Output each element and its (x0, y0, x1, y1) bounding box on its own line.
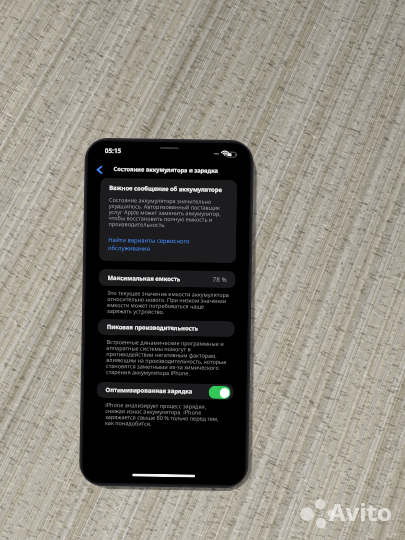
staticText: iPhone анализирует процесс зарядки, сниж… (105, 401, 227, 429)
staticText: Avito (329, 495, 392, 528)
button[interactable]: Максимальная емкость (98, 269, 236, 288)
staticText: Встроенные динамические программные и ап… (106, 338, 228, 378)
staticText: Важное сообщение об аккумуляторе (109, 184, 222, 194)
staticText: Это текущее значение емкости аккумулятор… (107, 289, 229, 317)
staticText: Максимальная емкость (107, 274, 181, 283)
staticText: 78 % (212, 275, 228, 284)
staticText: Пиковая производительность (107, 323, 199, 333)
staticText: 05:15 (105, 146, 122, 155)
staticText: Оптимизированная зарядка (106, 386, 193, 395)
staticText: Состояние аккумулятора и зарядка (113, 165, 218, 175)
button[interactable]: Оптимизированная зарядка (208, 386, 231, 399)
button[interactable]: Найти варианты сервисного обслуживания (108, 236, 229, 253)
button[interactable]: Назад (91, 162, 107, 177)
button[interactable]: Пиковая производительность (98, 319, 235, 337)
staticText: Состояние аккумулятора значительно ухудш… (108, 196, 230, 230)
